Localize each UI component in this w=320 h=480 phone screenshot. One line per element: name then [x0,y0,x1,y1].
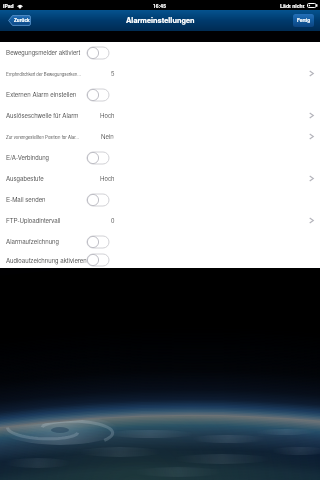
staticText: E-Mail senden [6,195,92,204]
staticText: Auslöseschwelle für Alarm [6,111,92,120]
button[interactable]: FTP-Uploadintervall [0,210,320,231]
button[interactable]: Bewegungsmelder aktiviert [0,42,320,63]
button[interactable]: Umschalten [87,152,109,164]
button[interactable]: Externen Alarm einstellen [0,84,320,105]
button[interactable]: Empfindlichkeit der Bewegungserken... [0,63,320,84]
staticText: Externen Alarm einstellen [6,90,92,99]
button[interactable]: Umschalten [87,236,109,248]
staticText: E/A-Verbindung [6,153,92,162]
staticText: Hoch [100,174,115,183]
staticText: Zurück [14,17,30,24]
button[interactable]: Audioaufzeichnung aktivieren [0,252,320,268]
button[interactable]: Ausgabestufe [0,168,320,189]
staticText: Empfindlichkeit der Bewegungserken... [6,71,92,77]
button[interactable]: Zurück [8,15,31,26]
staticText: 16:45 [153,2,167,9]
staticText: iPad [3,2,14,9]
button[interactable]: E/A-Verbindung [0,147,320,168]
staticText: 5 [111,69,115,78]
button[interactable]: Auslöseschwelle für Alarm [0,105,320,126]
staticText: Fertig [297,17,311,24]
button[interactable]: Umschalten [87,89,109,101]
button[interactable]: Fertig [293,14,314,27]
staticText: Alarmeinstellungen [126,15,195,26]
button[interactable]: Umschalten [87,47,109,59]
staticText: Alarmaufzeichnung [6,237,92,246]
staticText: 0 [111,216,115,225]
staticText: FTP-Uploadintervall [6,216,92,225]
button[interactable]: E-Mail senden [0,189,320,210]
staticText: Nein [101,132,114,141]
staticText: Bewegungsmelder aktiviert [6,48,92,57]
button[interactable]: Zur voreingestellten Position für Alar..… [0,126,320,147]
button[interactable]: Umschalten [87,254,109,266]
staticText: Zur voreingestellten Position für Alar..… [6,134,92,140]
staticText: Lädt nicht [280,2,305,9]
staticText: Audioaufzeichnung aktivieren [6,256,92,265]
staticText: Hoch [100,111,115,120]
button[interactable]: Alarmaufzeichnung [0,231,320,252]
staticText: Ausgabestufe [6,174,92,183]
button[interactable]: Umschalten [87,194,109,206]
